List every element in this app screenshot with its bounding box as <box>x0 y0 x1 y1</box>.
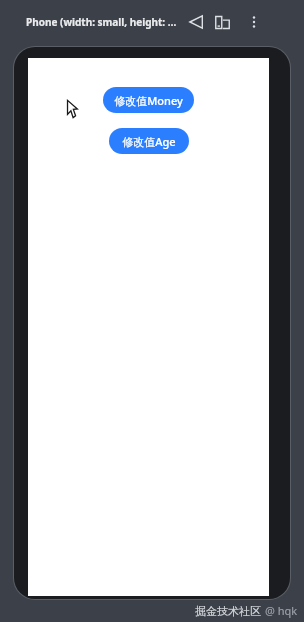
button[interactable]: More options <box>243 11 265 33</box>
staticText: Phone (width: small, height: … <box>26 15 177 29</box>
staticText: 修改值Age <box>122 134 176 149</box>
button[interactable]: Device settings <box>211 11 233 33</box>
button[interactable]: Run preview <box>185 11 207 33</box>
button[interactable]: 修改值Age <box>109 128 189 154</box>
staticText: @ hqk <box>265 603 298 618</box>
button[interactable]: 修改值Money <box>103 87 194 113</box>
staticText: 掘金技术社区 <box>195 604 261 618</box>
staticText: 修改值Money <box>114 93 183 108</box>
